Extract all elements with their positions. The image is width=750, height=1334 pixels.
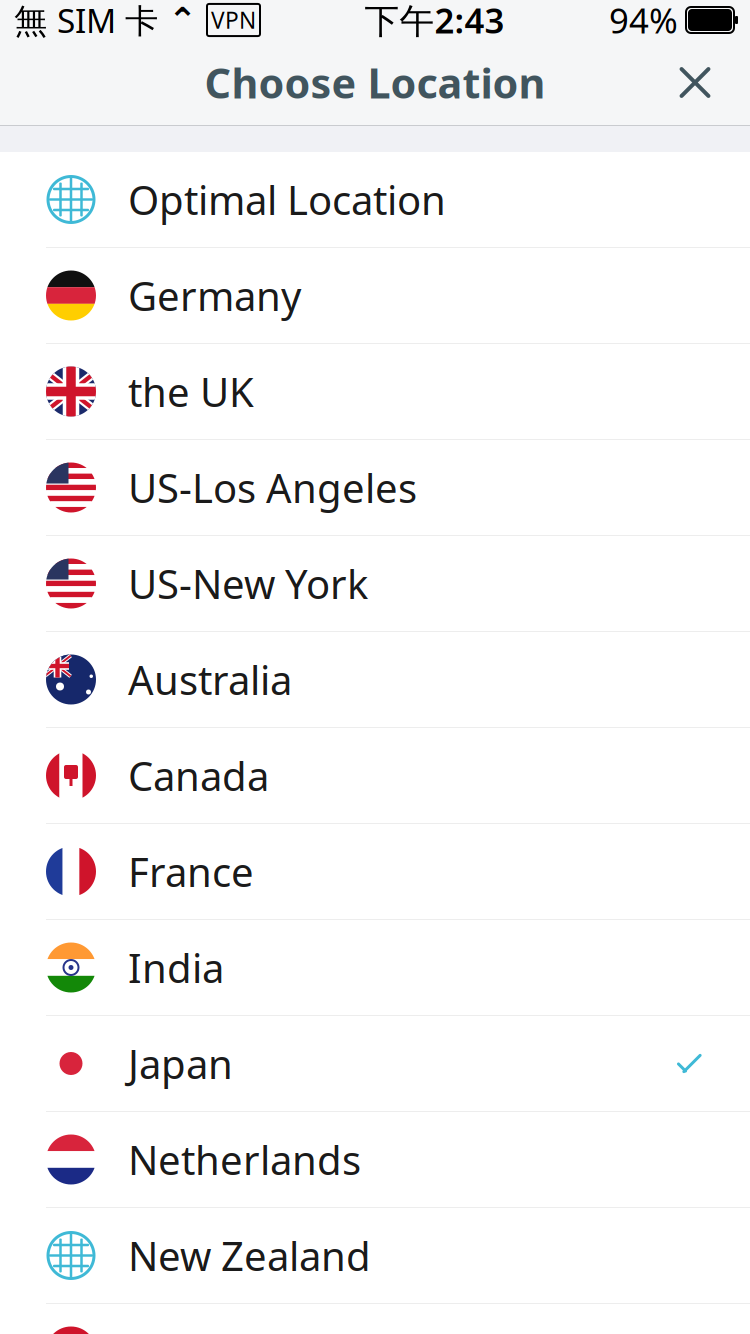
staticText: 無 SIM 卡 <box>14 0 158 42</box>
staticText: ⌃ <box>168 0 197 40</box>
button[interactable]: New Zealand <box>0 1208 750 1304</box>
staticText: US-Los Angeles <box>128 461 417 514</box>
button[interactable]: Netherlands <box>0 1112 750 1208</box>
staticText: New Zealand <box>128 1229 371 1282</box>
staticText: 94% <box>609 0 678 43</box>
button[interactable]: US-Los Angeles <box>0 440 750 536</box>
button[interactable]: Canada <box>0 728 750 824</box>
button[interactable]: Germany <box>0 248 750 344</box>
button[interactable]: Australia <box>0 632 750 728</box>
button[interactable]: the UK <box>0 344 750 440</box>
staticText: Germany <box>128 269 301 322</box>
button[interactable]: Japan <box>0 1016 750 1112</box>
staticText: Australia <box>128 653 292 706</box>
staticText: VPN <box>211 5 256 35</box>
staticText: Netherlands <box>128 1133 361 1186</box>
button[interactable]: Singapore <box>0 1304 750 1334</box>
button[interactable]: Close <box>660 47 730 117</box>
button[interactable]: France <box>0 824 750 920</box>
staticText: Japan <box>128 1037 233 1090</box>
staticText: Canada <box>128 749 269 802</box>
staticText: US-New York <box>128 557 368 610</box>
button[interactable]: US-New York <box>0 536 750 632</box>
staticText: France <box>128 845 254 898</box>
staticText: the UK <box>128 365 254 418</box>
button[interactable]: India <box>0 920 750 1016</box>
staticText: 下午2:43 <box>364 0 504 43</box>
staticText: Choose Location <box>204 55 545 110</box>
staticText: Optimal Location <box>128 173 446 226</box>
staticText: India <box>128 941 224 994</box>
button[interactable]: Optimal Location <box>0 152 750 248</box>
